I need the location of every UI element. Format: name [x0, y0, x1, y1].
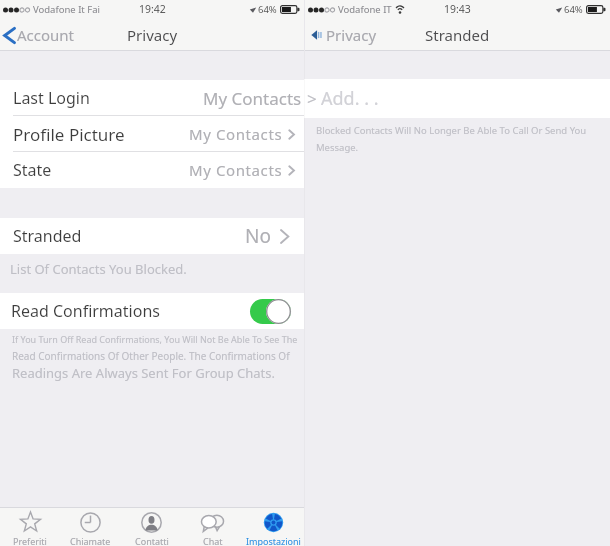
button[interactable]: Chat [182, 508, 243, 546]
staticText: No [245, 223, 271, 249]
button[interactable]: State [0, 152, 304, 188]
staticText: Privacy [127, 25, 178, 45]
staticText: Last Login [13, 87, 90, 109]
button[interactable]: Read Confirmations [0, 293, 304, 329]
staticText: If You Turn Off Read Confirmations, You … [12, 333, 298, 345]
button[interactable]: Profile Picture [0, 116, 304, 152]
staticText: My Contacts [189, 160, 283, 180]
staticText: Account [17, 25, 75, 45]
button[interactable]: Contatti [121, 508, 182, 546]
staticText: My Contacts [203, 87, 302, 110]
staticText: 19:43 [444, 2, 471, 16]
staticText: Privacy [326, 25, 377, 45]
staticText: Add. . . [321, 86, 379, 111]
staticText: Stranded [425, 25, 490, 45]
staticText: Read Confirmations Of Other People. The … [12, 349, 290, 363]
button[interactable]: Read confirmations toggle [250, 299, 291, 324]
staticText: Message. [316, 141, 359, 154]
button[interactable]: Privacy [305, 21, 385, 49]
staticText: Read Confirmations [11, 300, 160, 322]
button[interactable]: Last Login [0, 80, 304, 116]
staticText: Vodafone It Fai [33, 3, 100, 16]
staticText: Profile Picture [13, 123, 125, 146]
staticText: My Contacts [189, 124, 283, 144]
button[interactable]: Preferiti [0, 508, 60, 546]
staticText: Chat [203, 535, 223, 546]
staticText: Readings Are Always Sent For Group Chats… [12, 364, 275, 382]
staticText: State [13, 159, 52, 181]
staticText: > [307, 87, 317, 110]
button[interactable]: Chiamate [60, 508, 121, 546]
button[interactable]: Impostazioni [243, 508, 304, 546]
staticText: List Of Contacts You Blocked. [10, 260, 187, 278]
staticText: Contatti [135, 535, 169, 546]
staticText: 64% [564, 3, 583, 16]
staticText: 19:42 [139, 2, 166, 16]
staticText: Preferiti [13, 535, 47, 546]
staticText: Stranded [13, 225, 82, 247]
button[interactable]: Account [0, 21, 83, 49]
button[interactable]: Stranded [0, 218, 304, 254]
staticText: Impostazioni [246, 535, 301, 546]
staticText: Chiamate [70, 535, 111, 546]
staticText: Blocked Contacts Will No Longer Be Able … [316, 124, 587, 137]
staticText: 64% [258, 3, 277, 16]
staticText: Vodafone IT [338, 3, 392, 16]
